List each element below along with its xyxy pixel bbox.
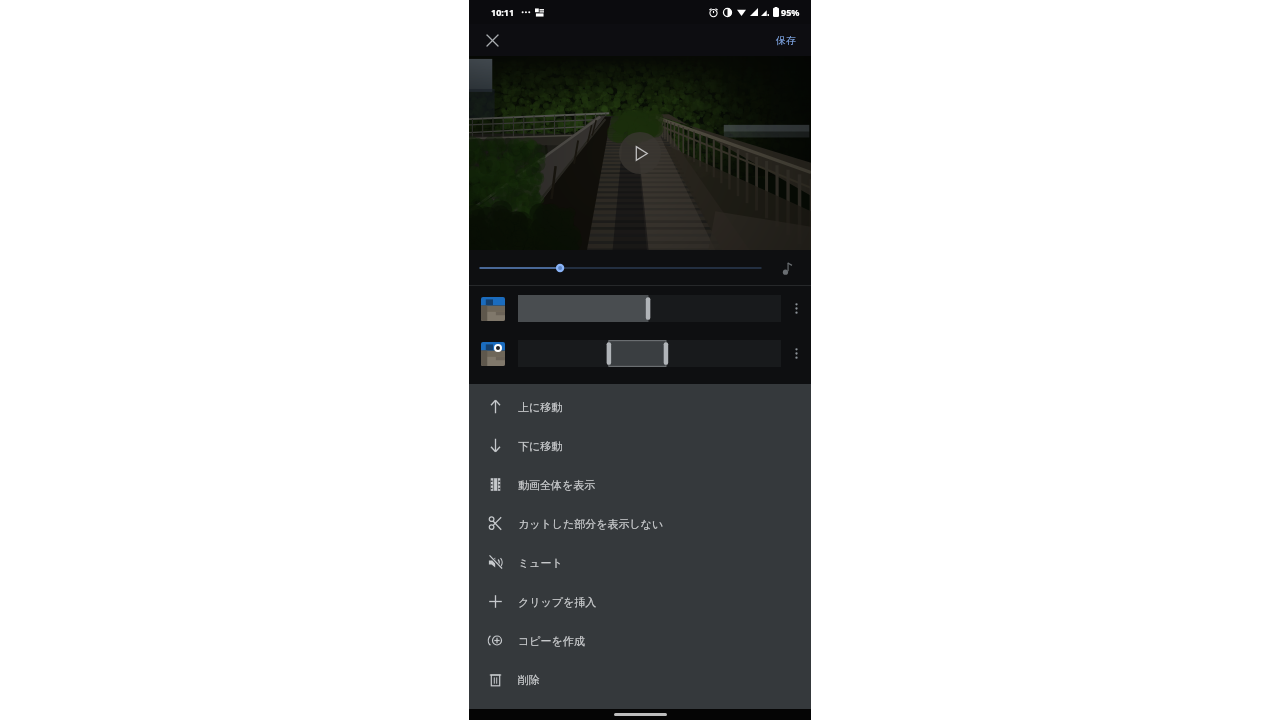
button[interactable]: 保存 — [771, 29, 801, 52]
button[interactable]: 下に移動 — [469, 426, 811, 465]
button[interactable]: その他のオプション — [469, 331, 811, 376]
button[interactable]: 上に移動 — [469, 387, 811, 426]
staticText: 動画全体を表示 — [518, 478, 596, 492]
button[interactable]: 動画全体を表示 — [469, 465, 811, 504]
staticText: 10:11 — [491, 6, 515, 18]
staticText: 削除 — [518, 673, 540, 687]
staticText: クリップを挿入 — [518, 595, 597, 609]
button[interactable]: コピーを作成 — [469, 621, 811, 660]
button[interactable]: その他のオプション — [781, 286, 811, 331]
button[interactable]: 閉じる — [479, 27, 505, 53]
staticText: コピーを作成 — [518, 634, 585, 648]
button[interactable]: 再生 — [619, 132, 661, 174]
button[interactable]: その他のオプション — [469, 286, 811, 331]
staticText: 保存 — [776, 34, 796, 47]
button[interactable]: カットした部分を表示しない — [469, 504, 811, 543]
button[interactable]: ミュート — [469, 543, 811, 582]
button[interactable]: 音楽を追加 — [773, 255, 799, 281]
staticText: ミュート — [518, 556, 563, 570]
staticText: 上に移動 — [518, 400, 563, 414]
staticText: カットした部分を表示しない — [518, 517, 664, 531]
button[interactable]: クリップを挿入 — [469, 582, 811, 621]
staticText: 下に移動 — [518, 439, 563, 453]
button[interactable]: その他のオプション — [781, 331, 811, 376]
staticText: 95% — [781, 6, 800, 18]
button[interactable]: 削除 — [469, 660, 811, 699]
